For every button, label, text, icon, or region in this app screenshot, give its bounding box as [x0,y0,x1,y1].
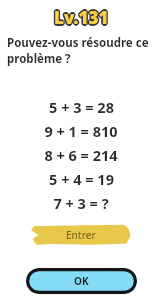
button[interactable]: OK [26,268,137,294]
button[interactable]: Entrer [31,224,131,245]
staticText: Entrer [66,228,96,242]
staticText: 7 + 3 = ? [53,193,109,213]
staticText: Pouvez-vous résoudre ce problème ? [7,35,156,66]
staticText: 5 + 4 = 19 [49,169,114,189]
staticText: 9 + 1 = 810 [44,121,118,141]
staticText: 5 + 3 = 28 [49,97,114,117]
staticText: OK [74,274,89,288]
staticText: 8 + 6 = 214 [44,145,118,165]
